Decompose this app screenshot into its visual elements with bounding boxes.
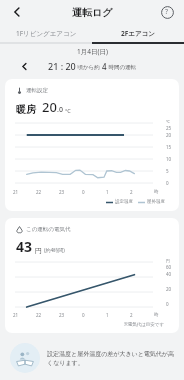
staticText: 10 (166, 156, 172, 162)
staticText: 40 (166, 271, 172, 277)
staticText: 円 (166, 258, 170, 263)
staticText: 0 (166, 180, 169, 186)
button[interactable]: Back (6, 1, 28, 23)
staticText: 25 (166, 125, 172, 131)
staticText: 2 (130, 189, 133, 195)
staticText: 1月4日(日) (77, 47, 108, 56)
button[interactable]: 2Fエアコン (92, 24, 184, 42)
staticText: 2 (130, 312, 133, 318)
staticText: 60 (166, 264, 172, 270)
staticText: 暖房 (16, 103, 36, 116)
staticText: ℃ (166, 119, 170, 124)
staticText: .0 (57, 105, 63, 115)
staticText: 1 (106, 189, 109, 195)
button[interactable]: Help (156, 1, 178, 23)
staticText: 20 (42, 98, 57, 116)
staticText: 運転設定 (26, 87, 48, 94)
button[interactable]: 1Fリビングエアコン (0, 24, 92, 42)
staticText: 時 (154, 189, 159, 195)
staticText: 0 (82, 312, 85, 318)
button[interactable]: Previous (16, 58, 32, 74)
staticText: 設定温度 (115, 199, 133, 205)
staticText: 設定温度と屋外温度の差が大きいと電気代が高くなります。 (47, 350, 174, 367)
staticText: 0 (82, 189, 85, 195)
staticText: 21 (13, 189, 19, 195)
staticText: 頃から約 (76, 63, 102, 71)
staticText: °C (65, 107, 71, 114)
staticText: 22 (36, 189, 42, 195)
staticText: 2Fエアコン (121, 29, 155, 38)
staticText: 屋外温度 (147, 199, 165, 205)
staticText: 21 (13, 312, 19, 318)
staticText: 21 : 20 (48, 60, 76, 72)
staticText: 23 (59, 312, 65, 318)
staticText: 15 (166, 144, 172, 150)
staticText: 22 (36, 312, 42, 318)
staticText: 20 (166, 132, 172, 138)
staticText: 43 (16, 237, 33, 256)
staticText: 5 (166, 168, 169, 174)
button[interactable]: 運転設定 (5, 79, 179, 211)
button[interactable]: この運転の電気代 (5, 218, 179, 333)
staticText: (約4時間) (44, 247, 65, 254)
staticText: ※電気代は目安です (124, 321, 165, 327)
staticText: 時間の運転 (107, 63, 137, 71)
staticText: 4 (102, 61, 107, 72)
staticText: ? (165, 7, 169, 17)
staticText: 運転ログ (72, 6, 113, 19)
staticText: 20 (166, 286, 172, 292)
staticText: 23 (59, 189, 65, 195)
staticText: 円 (35, 246, 42, 255)
staticText: 1Fリビングエアコン (16, 29, 77, 38)
staticText: この運転の電気代 (26, 226, 71, 233)
staticText: 時 (154, 312, 159, 318)
staticText: 0 (166, 301, 169, 307)
staticText: 1 (106, 312, 109, 318)
